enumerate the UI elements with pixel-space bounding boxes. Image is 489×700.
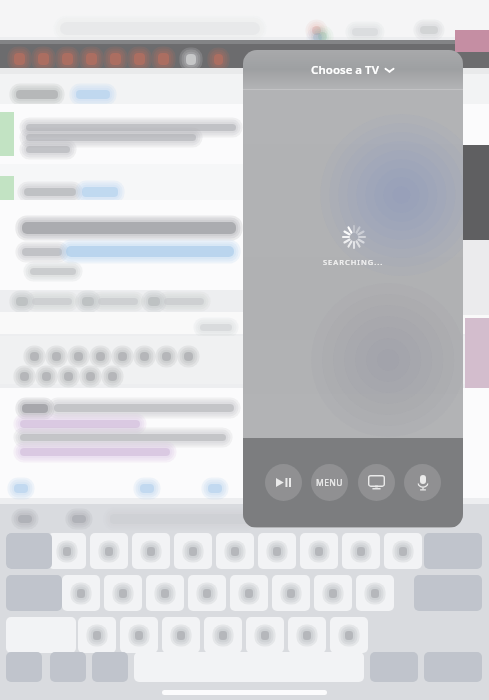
button[interactable]: Voice search	[404, 464, 441, 501]
button[interactable]: TV screen	[358, 464, 395, 501]
staticText: MENU	[316, 477, 344, 489]
button[interactable]: Play or pause	[265, 464, 302, 501]
button[interactable]: Menu	[311, 464, 348, 501]
staticText: SEARCHING...	[323, 257, 384, 267]
button[interactable]: Choose a TV	[243, 50, 463, 89]
staticText: Choose a TV	[311, 62, 379, 78]
